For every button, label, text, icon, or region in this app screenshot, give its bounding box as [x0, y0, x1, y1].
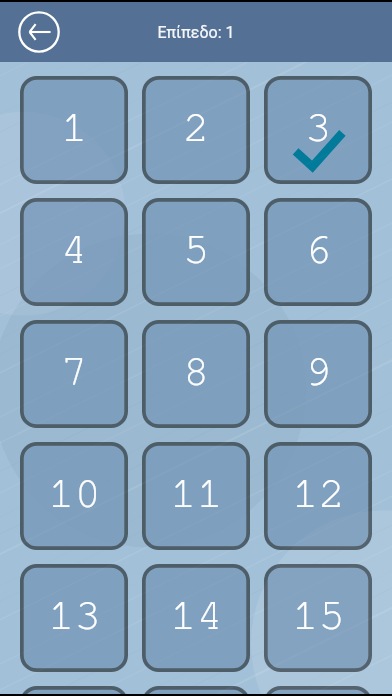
staticText: 7	[61, 350, 88, 394]
button[interactable]: 9	[264, 320, 372, 428]
button[interactable]: 2	[142, 76, 250, 184]
staticText: 11	[170, 472, 223, 516]
button[interactable]: 6	[264, 198, 372, 306]
staticText: 6	[305, 228, 332, 272]
staticText: 14	[170, 594, 223, 638]
button[interactable]: 7	[20, 320, 128, 428]
button[interactable]: 5	[142, 198, 250, 306]
button[interactable]: 16	[20, 686, 128, 694]
staticText: 13	[48, 594, 101, 638]
staticText: 1	[61, 106, 88, 150]
button[interactable]: 12	[264, 442, 372, 550]
staticText: 2	[183, 106, 210, 150]
staticText: 15	[292, 594, 345, 638]
button[interactable]: 18	[264, 686, 372, 694]
button[interactable]: 4	[20, 198, 128, 306]
button[interactable]: 3	[264, 76, 372, 184]
staticText: 4	[61, 228, 88, 272]
button[interactable]: 13	[20, 564, 128, 672]
staticText: 9	[305, 350, 332, 394]
staticText: 12	[292, 472, 345, 516]
button[interactable]: 10	[20, 442, 128, 550]
staticText: 3	[305, 106, 332, 150]
button[interactable]: 1	[20, 76, 128, 184]
button[interactable]: 17	[142, 686, 250, 694]
button[interactable]: Back	[18, 11, 60, 53]
staticText: Επίπεδο: 1	[157, 23, 235, 42]
button[interactable]: 14	[142, 564, 250, 672]
button[interactable]: 15	[264, 564, 372, 672]
staticText: 5	[183, 228, 210, 272]
button[interactable]: 8	[142, 320, 250, 428]
button[interactable]: 11	[142, 442, 250, 550]
staticText: 8	[183, 350, 210, 394]
staticText: 10	[48, 472, 101, 516]
